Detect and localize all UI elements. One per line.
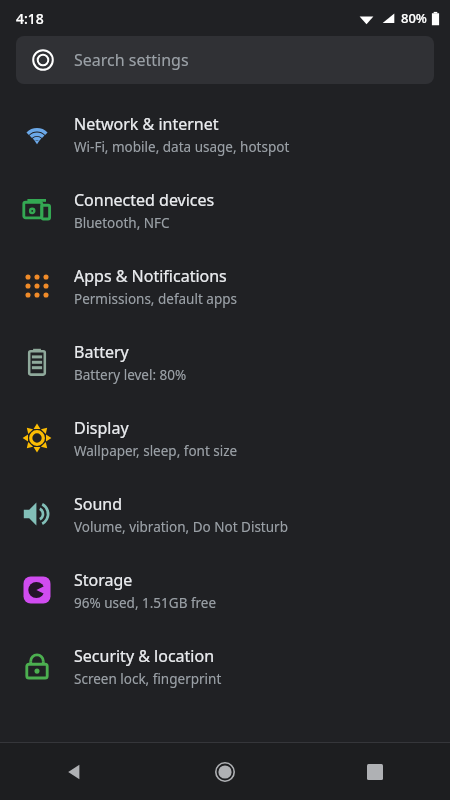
staticText: Battery level: 80% bbox=[74, 366, 187, 384]
button[interactable]: Display bbox=[0, 400, 450, 476]
staticText: Search settings bbox=[74, 49, 189, 71]
button[interactable]: Security & location bbox=[0, 628, 450, 704]
button[interactable]: Battery bbox=[0, 324, 450, 400]
staticText: Apps & Notifications bbox=[74, 265, 227, 287]
staticText: Volume, vibration, Do Not Disturb bbox=[74, 518, 288, 536]
button[interactable]: Network & internet bbox=[0, 96, 450, 172]
staticText: Wallpaper, sleep, font size bbox=[74, 442, 238, 460]
button[interactable]: Sound bbox=[0, 476, 450, 552]
staticText: Storage bbox=[74, 569, 133, 591]
button[interactable]: Search settings bbox=[16, 36, 434, 84]
button[interactable]: Recent apps bbox=[300, 743, 450, 800]
button[interactable]: Apps & Notifications bbox=[0, 248, 450, 324]
staticText: 4:18 bbox=[16, 9, 44, 28]
staticText: 96% used, 1.51GB free bbox=[74, 594, 217, 612]
staticText: 80% bbox=[401, 9, 427, 27]
staticText: Connected devices bbox=[74, 189, 215, 211]
staticText: Security & location bbox=[74, 645, 215, 667]
button[interactable]: Storage bbox=[0, 552, 450, 628]
button[interactable]: Home bbox=[150, 743, 300, 800]
staticText: Screen lock, fingerprint bbox=[74, 670, 222, 688]
button[interactable]: Connected devices bbox=[0, 172, 450, 248]
staticText: Network & internet bbox=[74, 113, 219, 135]
staticText: Sound bbox=[74, 493, 123, 515]
button[interactable]: Back bbox=[0, 743, 150, 800]
staticText: Display bbox=[74, 417, 129, 439]
staticText: Permissions, default apps bbox=[74, 290, 237, 308]
staticText: Wi-Fi, mobile, data usage, hotspot bbox=[74, 138, 290, 156]
staticText: Battery bbox=[74, 341, 129, 363]
staticText: Bluetooth, NFC bbox=[74, 214, 170, 232]
